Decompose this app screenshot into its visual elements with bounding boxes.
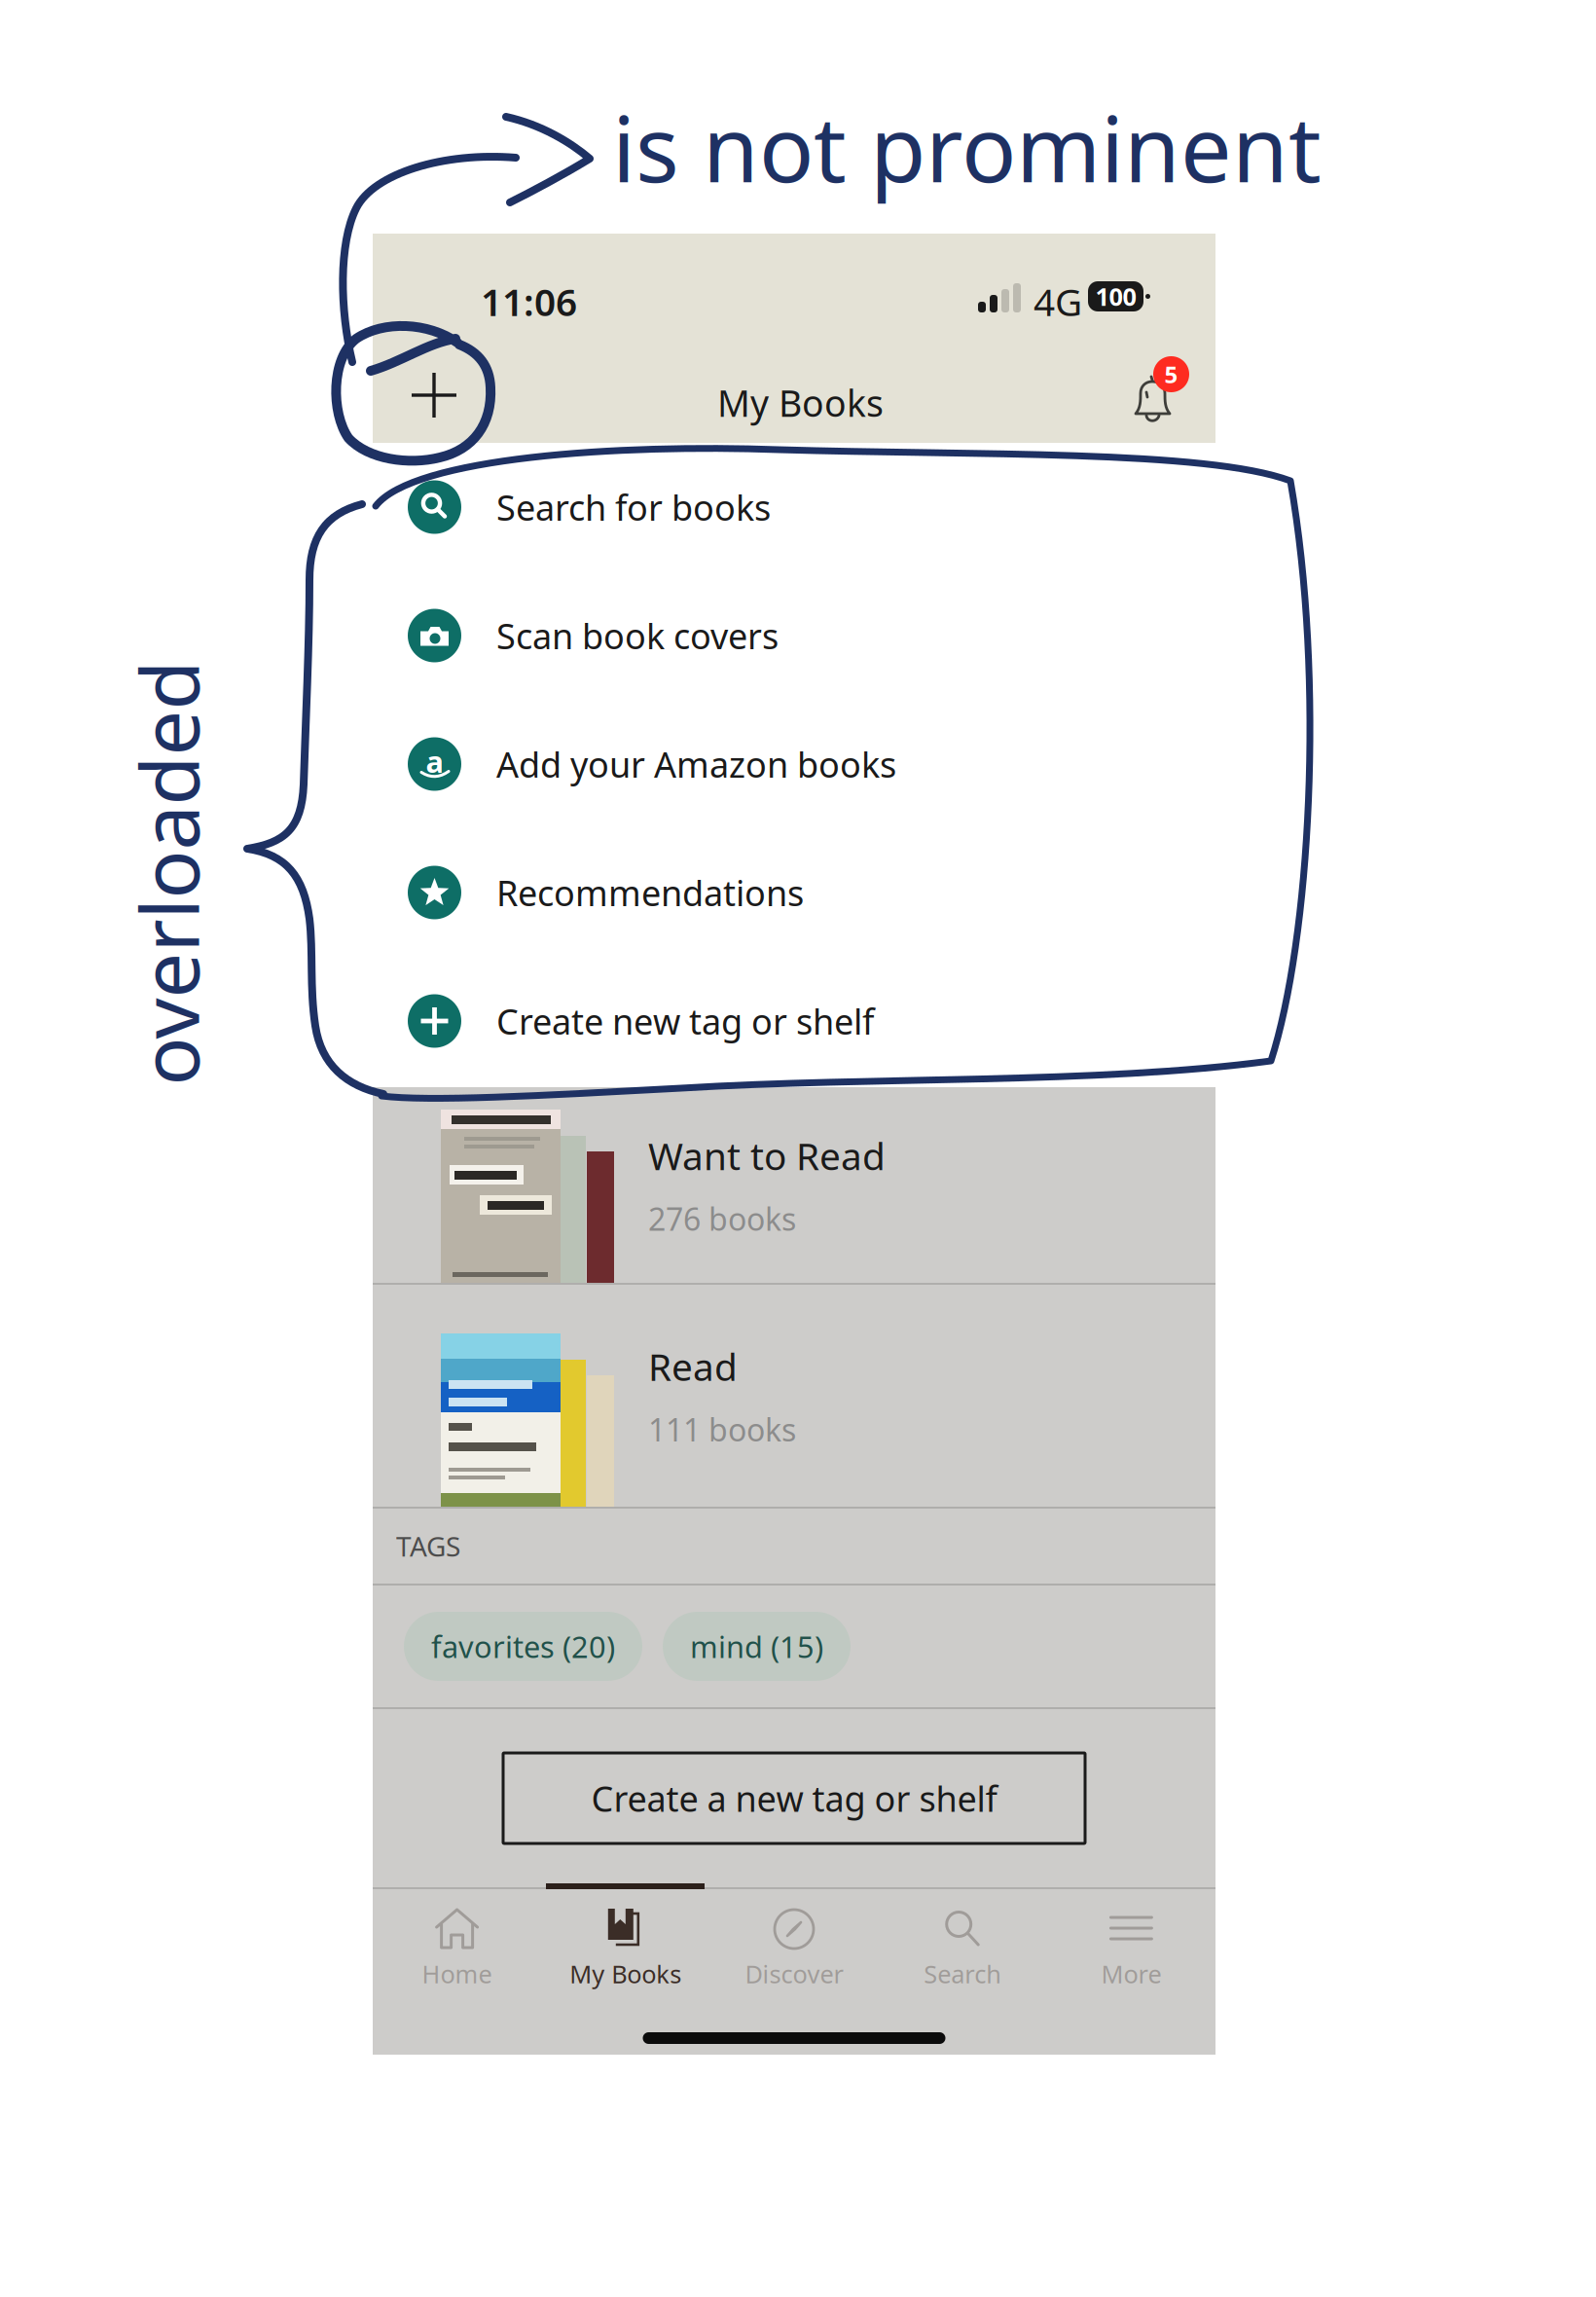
button[interactable]: Scan book covers	[373, 571, 1215, 700]
button[interactable]: Recommendations	[373, 828, 1215, 957]
button[interactable]: Discover	[710, 1889, 878, 2004]
button[interactable]: Home	[373, 1889, 541, 2004]
staticText: My Books	[570, 1957, 682, 1990]
staticText: mind (15)	[690, 1626, 823, 1666]
button[interactable]: Read	[373, 1285, 1215, 1507]
button[interactable]: My Books	[541, 1889, 710, 2004]
button[interactable]: Notifications	[1112, 353, 1194, 435]
button[interactable]: Search	[878, 1889, 1047, 2004]
button[interactable]: Create a new tag or shelf	[503, 1753, 1085, 1843]
staticText: 11:06	[481, 276, 577, 326]
staticText: 5	[1164, 359, 1178, 390]
staticText: Home	[422, 1957, 492, 1990]
staticText: My Books	[717, 379, 884, 427]
staticText: 276 books	[648, 1198, 796, 1239]
staticText: 111 books	[648, 1409, 796, 1450]
staticText: 100	[1095, 280, 1136, 313]
staticText: a	[426, 741, 443, 781]
staticText: overloaded	[0, 820, 381, 926]
staticText: TAGS	[396, 1528, 460, 1564]
button[interactable]: More	[1047, 1889, 1215, 2004]
button[interactable]: Search for books	[373, 443, 1215, 571]
staticText: Create new tag or shelf	[496, 998, 874, 1044]
staticText: More	[1101, 1957, 1161, 1990]
staticText: Want to Read	[648, 1131, 886, 1181]
button[interactable]: Create new tag or shelf	[373, 957, 1215, 1085]
staticText: Scan book covers	[496, 612, 779, 659]
button[interactable]: Add book	[393, 354, 475, 436]
button[interactable]: a	[373, 700, 1215, 828]
button[interactable]: mind (15)	[663, 1612, 851, 1681]
staticText: Search	[924, 1957, 1002, 1990]
staticText: Read	[648, 1341, 738, 1391]
staticText: 4G	[1034, 276, 1082, 326]
button[interactable]: favorites (20)	[404, 1612, 642, 1681]
staticText: Recommendations	[496, 869, 804, 916]
button[interactable]: Want to Read	[373, 1087, 1215, 1283]
staticText: Add your Amazon books	[496, 741, 896, 787]
staticText: favorites (20)	[431, 1626, 615, 1666]
staticText: is not prominent	[612, 87, 1322, 207]
staticText: Search for books	[496, 484, 771, 530]
staticText: Discover	[745, 1957, 843, 1990]
staticText: Create a new tag or shelf	[591, 1775, 997, 1821]
